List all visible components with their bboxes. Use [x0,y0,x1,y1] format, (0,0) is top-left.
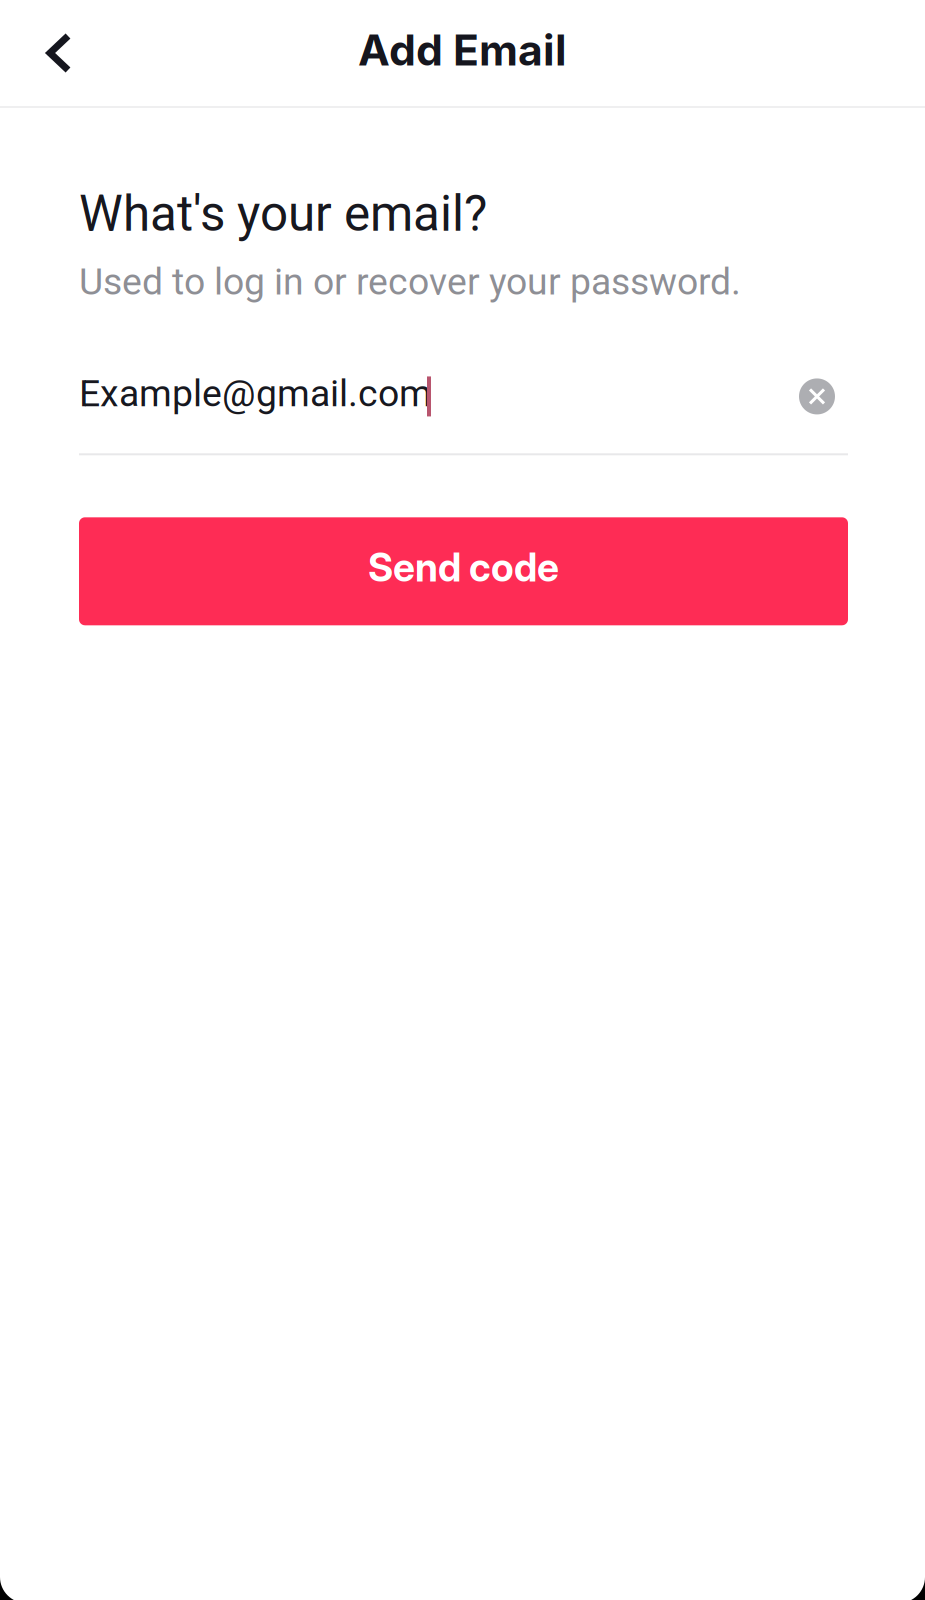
staticText: Add Email [358,24,567,76]
staticText: Used to log in or recover your password. [79,260,741,303]
button[interactable]: Back [0,0,116,106]
staticText: What's your email? [79,185,487,243]
button[interactable]: Send code [79,517,848,625]
staticText: Example@gmail.com [79,372,432,415]
button[interactable]: Clear text [798,375,848,411]
staticText: Send code [368,544,559,591]
